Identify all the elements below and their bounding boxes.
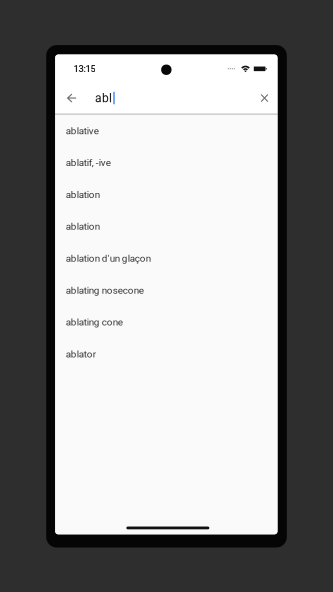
staticText: ablation d'un glaçon [66,253,151,264]
staticText: ablation [66,189,100,200]
button[interactable]: Clear search [254,86,274,110]
button[interactable]: Back [61,86,83,110]
staticText: ablation [66,221,100,232]
button[interactable]: abl [83,86,254,110]
button[interactable]: ablation d'un glaçon [55,242,277,274]
button[interactable]: ablating nosecone [55,274,277,306]
button[interactable]: ablator [55,338,277,370]
button[interactable]: ablatif, -ive [55,147,277,179]
staticText: ablative [66,125,99,137]
staticText: ablator [66,348,96,360]
staticText: 13:15 [73,63,95,74]
button[interactable]: ablating cone [55,306,277,338]
button[interactable]: ablation [55,179,277,210]
staticText: ablating cone [66,316,123,328]
staticText: ablating nosecone [66,284,144,296]
staticText: abl [95,91,112,105]
button[interactable]: ablative [55,115,277,147]
button[interactable]: ablation [55,210,277,242]
staticText: ablatif, -ive [66,157,111,168]
